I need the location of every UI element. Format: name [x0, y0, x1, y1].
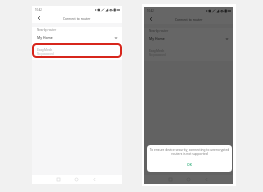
button[interactable]: OK — [177, 161, 202, 168]
staticText: Connect to router — [63, 16, 91, 20]
staticText: EasyMesh — [149, 48, 165, 52]
staticText: Nearby router — [149, 29, 233, 33]
button[interactable]: EasyMesh — [32, 43, 122, 58]
staticText: 10:42 — [147, 9, 154, 13]
button[interactable]: Back — [144, 14, 157, 24]
button[interactable]: My Home — [144, 33, 233, 44]
staticText: OK — [187, 162, 192, 167]
staticText: To ensure device security, connecting to… — [147, 148, 232, 156]
button[interactable]: Back — [32, 13, 45, 23]
staticText: Nearby router — [37, 28, 122, 32]
staticText: 10:42 — [35, 8, 42, 12]
staticText: My Home — [149, 36, 165, 41]
staticText: My Home — [37, 35, 53, 40]
staticText: No password — [149, 53, 166, 57]
button[interactable]: Recents — [53, 175, 63, 184]
staticText: Connect to router — [175, 17, 203, 21]
button[interactable]: Back — [89, 175, 99, 184]
staticText: No password — [37, 52, 54, 56]
button[interactable]: Home — [71, 175, 81, 184]
button[interactable]: My Home — [32, 32, 122, 43]
staticText: EasyMesh — [37, 47, 53, 51]
